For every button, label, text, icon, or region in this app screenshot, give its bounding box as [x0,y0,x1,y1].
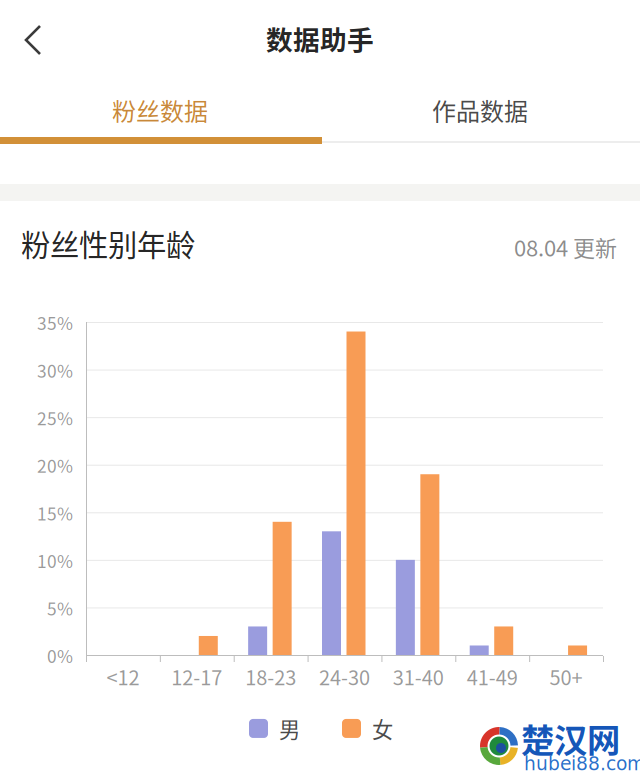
staticText: 12-17 [171,662,222,691]
staticText: 男 [279,713,300,744]
staticText: 粉丝数据 [112,93,208,127]
staticText: 35% [37,310,73,335]
staticText: 18-23 [245,662,296,691]
staticText: 25% [37,405,73,430]
staticText: 20% [37,453,73,478]
staticText: hubei88.com [524,753,640,775]
staticText: 31-40 [393,662,444,691]
staticText: 41-49 [467,662,518,691]
staticText: 0% [47,643,73,668]
button[interactable]: 作品数据 [320,86,640,134]
staticText: 08.04 更新 [514,231,617,263]
staticText: 数据助手 [266,19,374,58]
button[interactable]: Back [5,12,61,68]
staticText: <12 [106,662,139,691]
staticText: 粉丝性别年龄 [21,222,195,264]
button[interactable]: 粉丝数据 [0,86,320,134]
staticText: 作品数据 [432,93,528,127]
staticText: 30% [37,358,73,383]
staticText: 楚汉网 [521,714,620,762]
staticText: 15% [37,500,73,525]
staticText: 50+ [550,662,583,691]
staticText: 10% [37,548,73,573]
staticText: 女 [372,713,393,744]
staticText: 5% [47,595,73,620]
staticText: 24-30 [319,662,370,691]
